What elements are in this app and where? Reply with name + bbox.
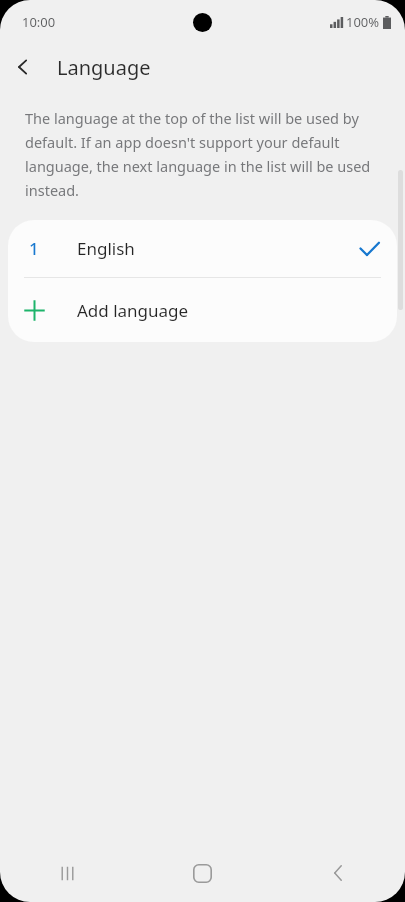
button[interactable]: Home [135, 844, 270, 902]
button[interactable]: Add language [8, 278, 397, 342]
staticText: Add language [77, 299, 189, 322]
button[interactable]: Recent apps [0, 844, 135, 902]
staticText: The language at the top of the list will… [25, 108, 383, 200]
staticText: 1 [29, 237, 39, 260]
staticText: Language [57, 54, 151, 81]
staticText: 100% [346, 13, 380, 31]
staticText: 10:00 [22, 13, 56, 31]
button[interactable]: Back [270, 844, 405, 902]
button[interactable]: 1 [8, 220, 397, 277]
staticText: English [77, 237, 135, 260]
button[interactable]: Back [0, 44, 46, 90]
